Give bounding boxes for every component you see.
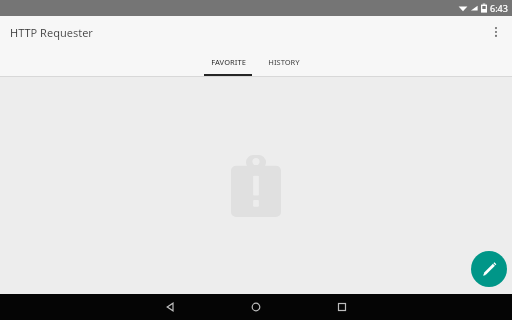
staticText: FAVORITE (211, 57, 246, 67)
button[interactable]: Back (156, 294, 184, 320)
button[interactable]: Recent apps (328, 294, 356, 320)
staticText: HTTP Requester (10, 25, 93, 40)
button[interactable]: More options (480, 16, 512, 48)
button[interactable]: Home (242, 294, 270, 320)
button[interactable]: FAVORITE (204, 48, 252, 76)
staticText: 6:43 (490, 2, 508, 14)
button[interactable]: New request (471, 251, 507, 287)
staticText: HISTORY (268, 57, 300, 67)
button[interactable]: HISTORY (260, 48, 308, 76)
